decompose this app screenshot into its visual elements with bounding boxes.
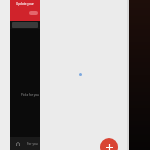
button[interactable]: [29, 11, 38, 15]
staticText: Update your: [16, 2, 34, 6]
button[interactable]: For you: [25, 137, 40, 150]
staticText: Picks for you: [21, 93, 39, 97]
button[interactable]: Add: [100, 138, 118, 150]
staticText: For you: [27, 142, 38, 146]
button[interactable]: Add: [40, 0, 128, 150]
button[interactable]: Update your: [10, 0, 40, 21]
button[interactable]: [129, 0, 150, 150]
button[interactable]: Home: [10, 137, 25, 150]
button[interactable]: Update your: [10, 0, 40, 150]
